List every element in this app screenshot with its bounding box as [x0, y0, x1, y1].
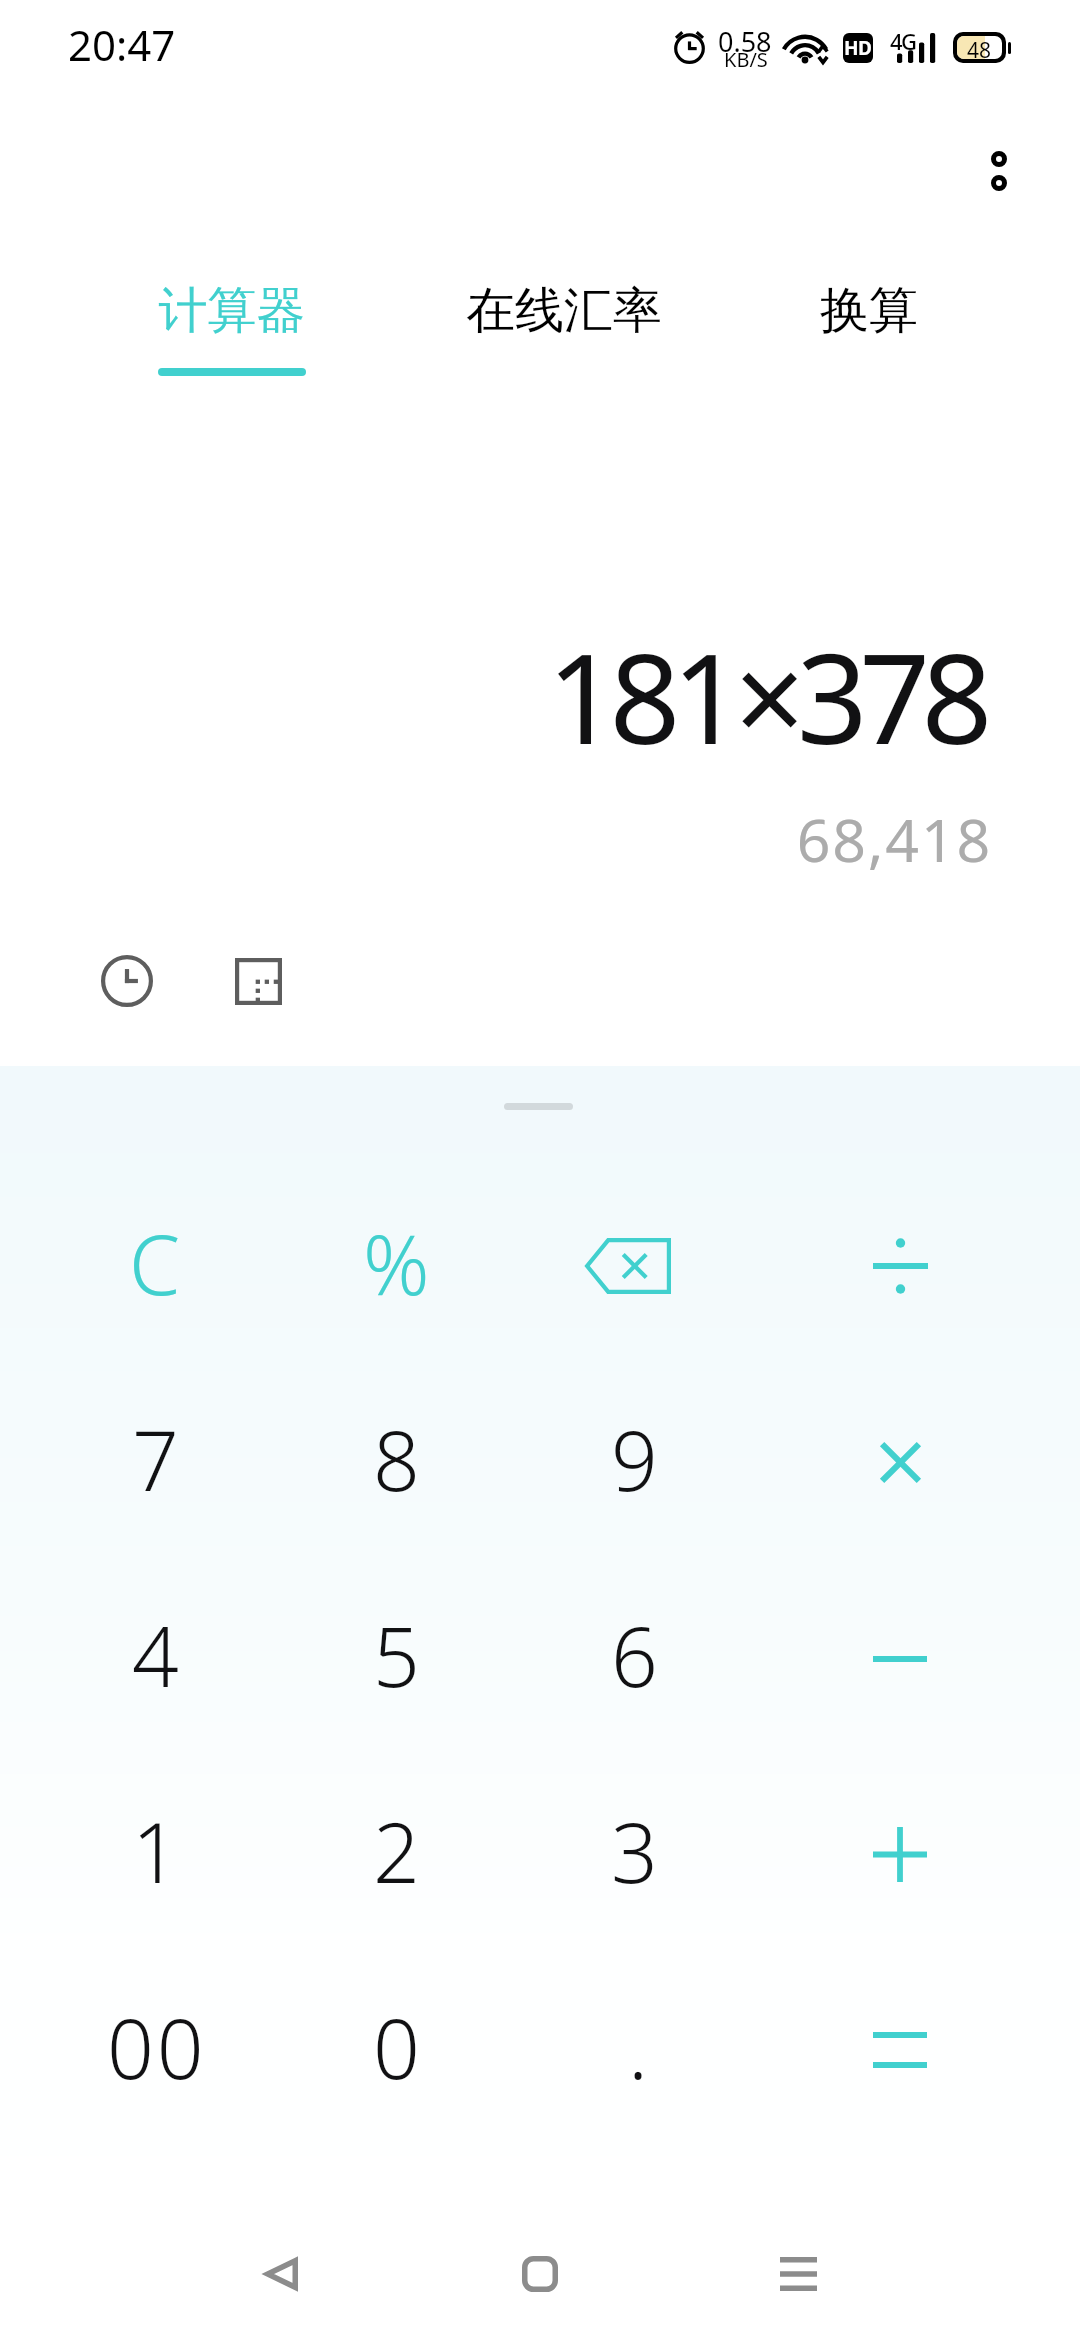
button[interactable]: 00 — [0, 1949, 277, 2145]
button[interactable]: 换算 — [716, 250, 1080, 385]
staticText: 7 — [132, 1403, 182, 1515]
staticText: 在线汇率 — [454, 280, 674, 342]
button[interactable]: 6 — [516, 1557, 768, 1753]
button[interactable]: Back — [191, 2184, 371, 2340]
staticText: KB/S — [724, 46, 768, 73]
staticText: C — [129, 1207, 184, 1319]
staticText: 换算 — [759, 280, 979, 342]
button[interactable]: More options — [955, 127, 1043, 215]
staticText: 8 — [373, 1403, 423, 1515]
staticText: 计算器 — [122, 280, 342, 342]
button[interactable]: C — [0, 1165, 277, 1361]
button[interactable] — [768, 1753, 1080, 1949]
staticText: 20:47 — [68, 16, 176, 73]
staticText: 0 — [373, 1991, 423, 2103]
staticText: 5 — [373, 1599, 423, 1711]
button[interactable]: History — [83, 937, 171, 1025]
button[interactable]: 7 — [0, 1361, 277, 1557]
button[interactable]: . — [516, 1949, 768, 2145]
button[interactable]: 1 — [0, 1753, 277, 1949]
staticText: 4 — [132, 1599, 182, 1711]
staticText: 48 — [967, 36, 992, 59]
button[interactable] — [768, 1949, 1080, 2145]
button[interactable]: 4 — [0, 1557, 277, 1753]
staticText: 3 — [611, 1795, 661, 1907]
staticText: % — [363, 1207, 433, 1319]
staticText: 6 — [611, 1599, 661, 1711]
other: Delete — [585, 1238, 671, 1294]
button[interactable]: 0 — [277, 1949, 516, 2145]
button[interactable]: 3 — [516, 1753, 768, 1949]
button[interactable]: 计算器 — [0, 250, 398, 385]
staticText: 1 — [132, 1795, 182, 1907]
button[interactable]: % — [277, 1165, 516, 1361]
staticText: HD — [844, 35, 872, 61]
staticText: 00 — [107, 1991, 207, 2103]
button[interactable] — [768, 1557, 1080, 1753]
staticText: 2 — [373, 1795, 423, 1907]
staticText: 4G — [890, 26, 916, 56]
staticText: 0.58 — [718, 23, 772, 60]
button[interactable]: Scientific mode — [214, 937, 302, 1025]
button[interactable]: 2 — [277, 1753, 516, 1949]
button[interactable]: Home — [450, 2184, 630, 2340]
staticText: 181×378 — [547, 611, 984, 780]
button[interactable]: 在线汇率 — [398, 250, 716, 385]
button[interactable] — [768, 1165, 1080, 1361]
button[interactable]: Delete — [516, 1165, 768, 1361]
button[interactable]: 8 — [277, 1361, 516, 1557]
staticText: 9 — [611, 1403, 661, 1515]
staticText: 68,418 — [796, 799, 992, 879]
button[interactable] — [768, 1361, 1080, 1557]
button[interactable]: 9 — [516, 1361, 768, 1557]
button[interactable]: Recent apps — [708, 2184, 888, 2340]
staticText: . — [628, 1991, 652, 2103]
button[interactable]: 5 — [277, 1557, 516, 1753]
